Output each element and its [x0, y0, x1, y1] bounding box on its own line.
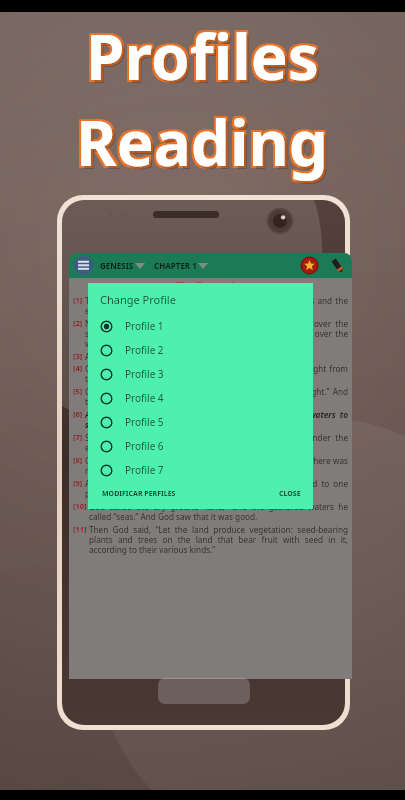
staticText: Profiles: [84, 12, 317, 96]
staticText: Profiles: [86, 12, 319, 96]
staticText: [8]: [73, 455, 83, 465]
staticText: God saw that the light was good, and he …: [85, 363, 348, 385]
button[interactable]: Profile 2: [100, 338, 303, 362]
staticText: [9]: [73, 478, 83, 488]
staticText: Reading: [79, 103, 332, 187]
button[interactable]: Profile 7: [100, 458, 303, 482]
staticText: Profiles: [88, 14, 321, 98]
staticText: The Beginning In the beginning God creat…: [85, 295, 348, 317]
staticText: Profile 3: [125, 367, 164, 381]
staticText: Profile 1: [125, 319, 164, 333]
staticText: [2]: [73, 318, 83, 328]
button[interactable]: Profile 3: [100, 362, 303, 386]
staticText: Reading: [76, 102, 329, 186]
staticText: Then God said, “Let the land produce veg…: [89, 524, 348, 556]
staticText: Now the earth was formless and empty, da…: [85, 318, 348, 350]
staticText: [4]: [73, 363, 83, 373]
staticText: CLOSE: [279, 489, 301, 499]
staticText: God called the light “day,” and the dark…: [85, 386, 348, 408]
staticText: Profiles: [84, 16, 317, 100]
button[interactable]: CLOSE: [277, 487, 303, 501]
staticText: So God made the expanse and separated th…: [85, 432, 348, 454]
staticText: [5]: [73, 386, 83, 396]
staticText: And God said, “Let the water under the s…: [85, 478, 348, 500]
staticText: Profiles: [88, 16, 321, 100]
staticText: Profile 6: [125, 439, 164, 453]
button[interactable]: MODIFICAR PERFILES: [100, 487, 178, 501]
staticText: Reading: [74, 100, 327, 184]
staticText: Reading: [78, 102, 331, 186]
button[interactable]: Menu: [74, 256, 93, 275]
staticText: [10]: [73, 501, 87, 511]
button[interactable]: Profile 4: [100, 386, 303, 410]
staticText: [3]: [73, 351, 83, 361]
button[interactable]: Highlight: [329, 257, 346, 274]
button[interactable]: Profile 5: [100, 410, 303, 434]
staticText: Reading: [74, 98, 327, 182]
button[interactable]: GENESIS: [100, 260, 145, 271]
staticText: Profiles: [84, 14, 317, 98]
staticText: And God said, “Let there be an expanse b…: [85, 409, 348, 431]
staticText: Profiles: [86, 16, 319, 100]
staticText: [7]: [73, 432, 83, 442]
staticText: Reading: [78, 98, 331, 182]
staticText: Reading: [78, 100, 331, 184]
staticText: MODIFICAR PERFILES: [102, 489, 176, 499]
staticText: Profiles: [86, 14, 319, 98]
button[interactable]: Favorite: [301, 257, 318, 274]
staticText: GENESIS: [100, 260, 134, 271]
staticText: Profile 7: [125, 463, 164, 477]
staticText: Reading: [74, 102, 327, 186]
staticText: Profiles: [88, 12, 321, 96]
button[interactable]: Profile 6: [100, 434, 303, 458]
staticText: Reading: [76, 100, 329, 184]
staticText: Profile 5: [125, 415, 164, 429]
button[interactable]: CHAPTER 1: [154, 260, 208, 271]
staticText: And God said, “Let there be light,” and …: [85, 351, 348, 362]
staticText: Profile 2: [125, 343, 164, 357]
staticText: Profiles: [89, 17, 322, 101]
staticText: [1]: [73, 295, 83, 305]
staticText: [6]: [73, 409, 83, 419]
button[interactable]: Profile 1: [100, 314, 303, 338]
staticText: God called the dry ground “land,” and th…: [89, 501, 348, 523]
staticText: The Beginning: [73, 279, 348, 293]
staticText: CHAPTER 1: [154, 260, 197, 271]
staticText: God called the expanse “sky.” And there …: [85, 455, 348, 477]
staticText: Profile 4: [125, 391, 164, 405]
staticText: Reading: [76, 98, 329, 182]
staticText: [11]: [73, 524, 87, 534]
staticText: Change Profile: [100, 292, 176, 307]
